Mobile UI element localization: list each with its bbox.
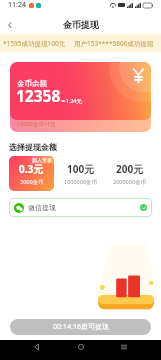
button[interactable]: 微信提现: [9, 198, 152, 217]
staticText: 用户153****5806成功提现200元: [74, 39, 161, 48]
staticText: 12358: [16, 85, 61, 106]
button[interactable]: 金币余额: [10, 62, 151, 132]
staticText: ≈1.24元: [61, 97, 83, 105]
button[interactable]: 100元: [59, 156, 103, 191]
button[interactable]: 0.3元: [9, 156, 54, 191]
staticText: *1595成功提现100元: [3, 39, 66, 48]
button[interactable]: Recent apps: [117, 340, 131, 354]
staticText: 选择提现金额: [9, 142, 57, 152]
button[interactable]: Home: [74, 340, 88, 354]
staticText: 10000金币=1元: [17, 120, 56, 128]
staticText: 00:14:16后可提现: [53, 322, 109, 332]
staticText: 金币提现: [63, 19, 99, 30]
staticText: 1000000金币: [64, 178, 98, 186]
button[interactable]: Back: [30, 340, 44, 354]
staticText: 新人专享: [32, 157, 52, 163]
button[interactable]: Back: [0, 15, 20, 34]
staticText: 11:24: [8, 0, 26, 10]
staticText: 0.3元: [19, 162, 44, 176]
staticText: 微信提现: [28, 203, 56, 212]
button[interactable]: 00:14:16后可提现: [10, 319, 151, 335]
staticText: 2000000金币: [113, 178, 147, 186]
staticText: 金币余额: [17, 79, 47, 88]
staticText: 100元: [67, 162, 95, 176]
button[interactable]: 200元: [108, 156, 152, 191]
staticText: 3000金币: [20, 178, 44, 186]
staticText: 200元: [116, 162, 144, 176]
